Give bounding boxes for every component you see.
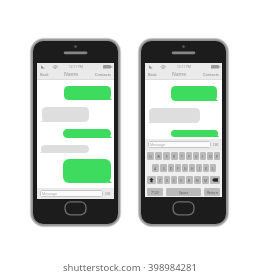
staticText: U	[195, 154, 198, 159]
staticText: P	[216, 154, 219, 159]
button[interactable]: E	[163, 152, 170, 160]
button[interactable]	[63, 159, 111, 183]
button[interactable]: Space	[166, 188, 201, 196]
staticText: K	[205, 166, 208, 171]
staticText: W	[157, 154, 161, 159]
staticText: I	[202, 154, 204, 159]
button[interactable]	[42, 107, 89, 122]
button[interactable]: B	[186, 176, 193, 184]
staticText: Back	[148, 72, 157, 77]
button[interactable]: Message	[40, 190, 103, 197]
staticText: Name	[64, 71, 79, 78]
staticText: X	[166, 178, 168, 183]
button[interactable]: N	[194, 176, 201, 184]
button[interactable]: S	[160, 164, 167, 172]
staticText: R	[173, 154, 176, 159]
button[interactable]	[64, 86, 111, 100]
staticText: Message	[150, 142, 165, 147]
button[interactable]: U	[193, 152, 199, 160]
staticText: H	[191, 166, 194, 171]
button[interactable]: J	[196, 164, 202, 172]
staticText: Return	[207, 190, 218, 195]
button[interactable]	[41, 145, 89, 153]
button[interactable]: W	[155, 152, 162, 160]
button[interactable]: Return	[204, 188, 220, 196]
staticText: V	[180, 178, 183, 183]
button[interactable]: OK	[213, 142, 219, 147]
button[interactable]: G	[182, 164, 188, 172]
staticText: Y	[188, 154, 190, 159]
button[interactable]: R	[171, 152, 178, 160]
staticText: OK	[105, 191, 111, 196]
button[interactable]: F	[175, 164, 181, 172]
staticText: G	[184, 166, 187, 171]
button[interactable]: O	[207, 152, 213, 160]
button[interactable]: L	[210, 164, 216, 172]
staticText: E	[166, 154, 168, 159]
button[interactable]: A	[152, 164, 159, 172]
staticText: J	[199, 166, 200, 171]
button[interactable]: Y	[186, 152, 192, 160]
button[interactable]	[171, 130, 218, 137]
button[interactable]: I	[200, 152, 206, 160]
button[interactable]: Delete	[210, 176, 220, 184]
button[interactable]: 7123	[147, 188, 163, 196]
staticText: A	[154, 166, 157, 171]
staticText: 12:11 PM	[69, 65, 83, 69]
button[interactable]	[63, 129, 111, 138]
button[interactable]: C	[171, 176, 177, 184]
button[interactable]: V	[178, 176, 185, 184]
button[interactable]: Contacts	[202, 71, 220, 78]
staticText: C	[173, 178, 176, 183]
button[interactable]: Contacts	[94, 71, 112, 78]
button[interactable]: H	[189, 164, 195, 172]
staticText: Back	[40, 72, 49, 77]
button[interactable]: Shift	[147, 176, 156, 184]
staticText: 12:11 PM	[177, 65, 191, 69]
staticText: Z	[159, 178, 161, 183]
staticText: O	[209, 154, 212, 159]
staticText: M	[204, 178, 208, 183]
button[interactable]	[149, 108, 200, 123]
staticText: Contacts	[95, 72, 111, 77]
button[interactable]: M	[202, 176, 209, 184]
button[interactable]: Message	[148, 141, 211, 148]
staticText: F	[177, 166, 179, 171]
staticText: Q	[149, 154, 152, 159]
button[interactable]: Z	[157, 176, 163, 184]
staticText: Contacts	[203, 72, 219, 77]
staticText: D	[170, 166, 173, 171]
button[interactable]: X	[164, 176, 170, 184]
button[interactable]: D	[168, 164, 174, 172]
staticText: Message	[42, 191, 57, 196]
button[interactable]: Back	[147, 71, 158, 78]
staticText: 7123	[151, 190, 159, 195]
button[interactable]: OK	[105, 191, 111, 196]
button[interactable]: Q	[147, 152, 154, 160]
button[interactable]: K	[203, 164, 209, 172]
button[interactable]: Back	[39, 71, 50, 78]
staticText: N	[196, 178, 199, 183]
button[interactable]: P	[214, 152, 220, 160]
staticText: B	[188, 178, 191, 183]
staticText: shutterstock.com · 398984281	[63, 261, 197, 274]
staticText: Name	[172, 71, 187, 78]
button[interactable]: T	[179, 152, 185, 160]
staticText: OK	[213, 142, 219, 147]
staticText: S	[163, 166, 165, 171]
staticText: T	[181, 154, 183, 159]
staticText: Space	[179, 190, 189, 195]
button[interactable]	[171, 86, 217, 101]
staticText: L	[212, 166, 214, 171]
